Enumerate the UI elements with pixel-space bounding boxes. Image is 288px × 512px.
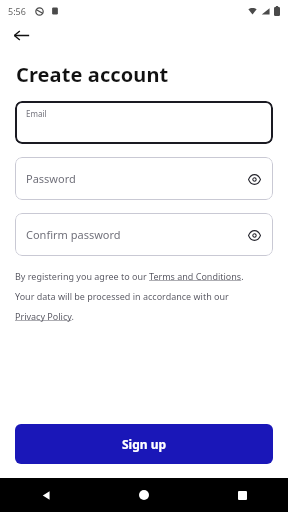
button[interactable]: Sign up bbox=[15, 424, 273, 464]
staticText: 5:56 bbox=[8, 5, 26, 17]
button[interactable]: Email bbox=[15, 101, 273, 144]
button[interactable]: By registering you agree to our Terms an… bbox=[15, 270, 273, 282]
button[interactable]: Back bbox=[0, 478, 96, 512]
button[interactable]: Back bbox=[6, 22, 36, 48]
button[interactable]: Privacy Policy. bbox=[15, 310, 273, 322]
staticText: Your data will be processed in accordanc… bbox=[15, 290, 273, 302]
button[interactable]: Home bbox=[96, 478, 192, 512]
button[interactable]: Password bbox=[15, 157, 273, 200]
button[interactable]: Confirm password bbox=[15, 213, 273, 256]
button[interactable]: Show password bbox=[241, 222, 267, 248]
staticText: Password bbox=[26, 171, 76, 186]
staticText: Sign up bbox=[122, 436, 167, 452]
staticText: Confirm password bbox=[26, 227, 121, 242]
button[interactable]: Show password bbox=[241, 166, 267, 192]
button[interactable]: Recent apps bbox=[192, 478, 288, 512]
staticText: Email bbox=[26, 108, 47, 119]
staticText: Create account bbox=[16, 61, 169, 88]
